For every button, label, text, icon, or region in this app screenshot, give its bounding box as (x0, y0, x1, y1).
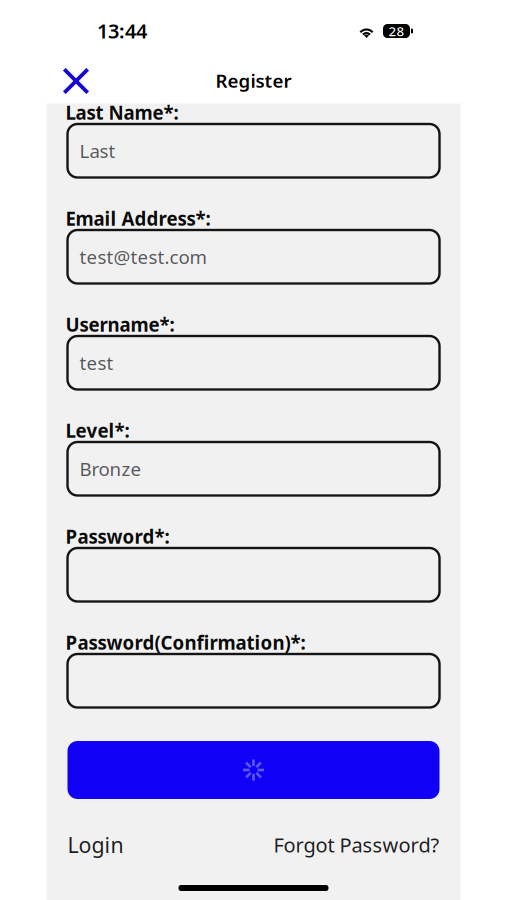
staticText: Password*: (65, 524, 169, 549)
staticText: Last (79, 138, 115, 163)
staticText: 28 (388, 22, 404, 40)
staticText: test@test.com (79, 244, 206, 269)
staticText: Username*: (65, 312, 174, 337)
staticText: Level*: (65, 418, 129, 443)
button[interactable] (67, 654, 439, 707)
button[interactable]: Bronze (67, 442, 439, 495)
button[interactable]: test (67, 336, 439, 389)
staticText: 13:44 (97, 17, 147, 44)
button[interactable]: Last (67, 124, 439, 177)
staticText: Password(Confirmation)*: (65, 630, 305, 655)
staticText: Register (215, 68, 291, 93)
button[interactable]: test@test.com (67, 230, 439, 283)
button[interactable]: Login (67, 830, 123, 859)
staticText: Login (67, 830, 123, 859)
staticText: Email Address*: (65, 206, 210, 231)
button[interactable]: Register (67, 741, 439, 799)
staticText: Last Name*: (65, 100, 178, 125)
button[interactable]: Close (62, 67, 90, 95)
staticText: test (79, 350, 113, 375)
staticText: Forgot Password? (273, 831, 439, 858)
button[interactable] (67, 548, 439, 601)
staticText: Bronze (79, 456, 141, 481)
button[interactable]: Forgot Password? (273, 831, 439, 858)
